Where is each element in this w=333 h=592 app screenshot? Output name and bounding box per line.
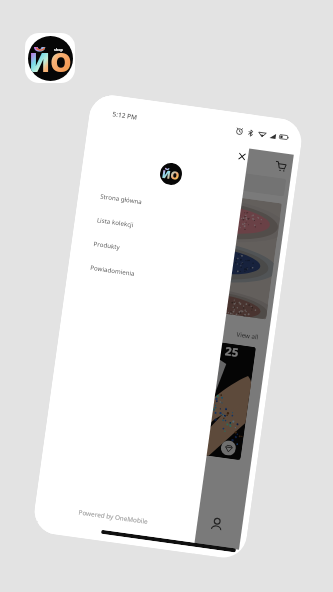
button[interactable]: Collections bbox=[87, 489, 143, 536]
button[interactable]: Close bbox=[235, 150, 249, 163]
staticText: 5:12 PM bbox=[112, 109, 138, 122]
button[interactable]: Home bbox=[37, 482, 93, 529]
button[interactable]: Lista kolekcji bbox=[74, 204, 238, 250]
staticText: ЙО bbox=[161, 166, 181, 183]
button[interactable]: Products bbox=[138, 496, 194, 543]
staticText: Strona główna bbox=[100, 191, 142, 205]
staticText: Powered by OneMobile bbox=[78, 507, 149, 526]
staticText: ЙО bbox=[29, 43, 72, 80]
staticText: Lista kolekcji bbox=[96, 215, 134, 228]
staticText: View all bbox=[236, 329, 259, 340]
button[interactable] bbox=[53, 321, 154, 446]
button[interactable]: Cart bbox=[274, 160, 287, 173]
staticText: 25 bbox=[224, 343, 240, 361]
staticText: Powiadomienia bbox=[90, 263, 136, 277]
button[interactable]: Profile bbox=[188, 503, 244, 550]
button[interactable]: Powiadomienia bbox=[67, 252, 232, 298]
button[interactable]: Favorite bbox=[220, 439, 237, 456]
button[interactable]: View all bbox=[236, 329, 259, 340]
staticText: Produkty bbox=[93, 239, 121, 251]
button[interactable]: Strona główna bbox=[77, 181, 242, 227]
button[interactable]: Search bbox=[98, 153, 286, 197]
button[interactable]: Produkty bbox=[70, 228, 235, 274]
button[interactable]: 25 bbox=[144, 334, 256, 460]
staticText: shop bbox=[54, 47, 63, 52]
